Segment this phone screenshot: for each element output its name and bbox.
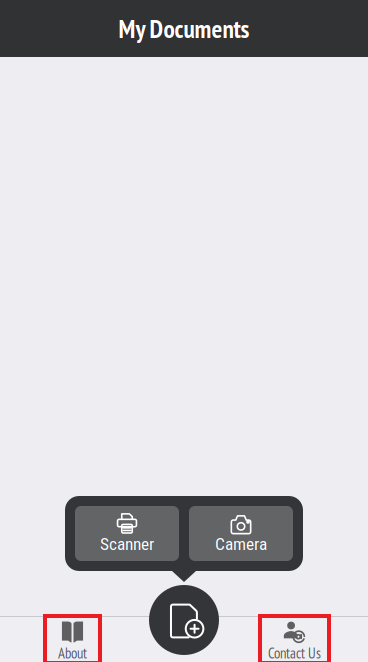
staticText: Contact Us xyxy=(268,643,321,662)
button[interactable]: About xyxy=(45,616,100,662)
staticText: About xyxy=(58,643,87,662)
staticText: My Documents xyxy=(118,12,249,45)
staticText: Camera xyxy=(215,534,267,554)
button[interactable]: Scanner xyxy=(75,506,179,561)
staticText: Scanner xyxy=(100,534,154,554)
button[interactable]: Camera xyxy=(189,506,293,561)
button[interactable]: Contact Us xyxy=(260,616,329,662)
button[interactable]: New Document xyxy=(149,585,219,655)
